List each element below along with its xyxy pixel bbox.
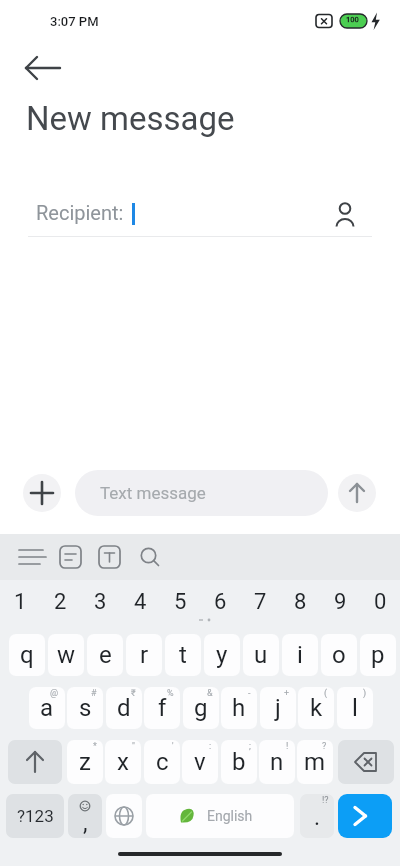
staticText: u bbox=[254, 641, 268, 669]
button[interactable]: l bbox=[337, 687, 373, 729]
button[interactable]: p bbox=[360, 634, 396, 676]
button[interactable]: 8 bbox=[280, 581, 320, 623]
staticText: " bbox=[132, 741, 135, 752]
button[interactable]: , bbox=[68, 794, 102, 838]
staticText: Recipient: bbox=[36, 201, 124, 224]
button[interactable]: 9 bbox=[320, 581, 360, 623]
button[interactable]: a bbox=[29, 687, 65, 729]
button[interactable]: z bbox=[67, 740, 103, 784]
button[interactable]: g bbox=[183, 687, 219, 729]
button[interactable]: f bbox=[144, 687, 180, 729]
button[interactable]: 7 bbox=[240, 581, 280, 623]
button[interactable]: 6 bbox=[200, 581, 240, 623]
staticText: . bbox=[314, 804, 321, 831]
button[interactable]: 0 bbox=[360, 581, 400, 623]
staticText: !? bbox=[322, 795, 329, 806]
staticText: v bbox=[194, 748, 206, 776]
staticText: 8 bbox=[294, 589, 307, 615]
staticText: & bbox=[207, 688, 213, 699]
staticText: l bbox=[352, 694, 358, 722]
staticText: , bbox=[83, 810, 88, 837]
staticText: t bbox=[179, 641, 187, 669]
button[interactable]: Recipient: bbox=[0, 192, 400, 236]
button[interactable]: s bbox=[67, 687, 103, 729]
staticText: + bbox=[284, 688, 290, 699]
button[interactable]: d bbox=[106, 687, 142, 729]
staticText: Text message bbox=[100, 483, 206, 503]
staticText: q bbox=[20, 641, 34, 669]
button[interactable]: 4 bbox=[120, 581, 160, 623]
staticText: y bbox=[216, 641, 228, 669]
staticText: n bbox=[270, 748, 284, 776]
button[interactable] bbox=[338, 794, 392, 838]
staticText: r bbox=[140, 641, 149, 669]
staticText: ?123 bbox=[17, 806, 54, 826]
staticText: 7 bbox=[254, 589, 267, 615]
staticText: % bbox=[167, 688, 174, 699]
button[interactable]: j bbox=[260, 687, 296, 729]
button[interactable]: English bbox=[146, 794, 294, 838]
staticText: 9 bbox=[334, 589, 347, 615]
button[interactable]: c bbox=[144, 740, 180, 784]
staticText: ) bbox=[363, 688, 367, 699]
button[interactable]: m bbox=[297, 740, 333, 784]
staticText: s bbox=[79, 694, 92, 722]
staticText: ₹ bbox=[131, 688, 136, 699]
staticText: ' bbox=[172, 741, 174, 752]
button[interactable]: Text message bbox=[75, 470, 328, 516]
button[interactable]: y bbox=[204, 634, 240, 676]
button[interactable]: k bbox=[298, 687, 334, 729]
staticText: z bbox=[79, 748, 91, 776]
staticText: o bbox=[332, 641, 346, 669]
staticText: 3 bbox=[94, 589, 107, 615]
button[interactable]: h bbox=[221, 687, 257, 729]
button[interactable]: 5 bbox=[160, 581, 200, 623]
button[interactable]: e bbox=[87, 634, 123, 676]
staticText: e bbox=[99, 641, 112, 669]
button[interactable]: t bbox=[165, 634, 201, 676]
staticText: ; bbox=[249, 741, 251, 752]
staticText: ! bbox=[286, 741, 289, 752]
button[interactable] bbox=[338, 740, 394, 784]
staticText: p bbox=[371, 641, 385, 669]
staticText: English bbox=[207, 808, 253, 824]
button[interactable]: u bbox=[243, 634, 279, 676]
button[interactable]: q bbox=[9, 634, 45, 676]
button[interactable]: . bbox=[300, 794, 334, 838]
button[interactable]: x bbox=[105, 740, 141, 784]
staticText: d bbox=[117, 694, 131, 722]
button[interactable]: o bbox=[321, 634, 357, 676]
staticText: i bbox=[297, 641, 303, 669]
staticText: 0 bbox=[374, 589, 387, 615]
staticText: m bbox=[304, 748, 326, 776]
staticText: j bbox=[275, 694, 281, 722]
button[interactable] bbox=[8, 740, 62, 784]
button[interactable] bbox=[23, 474, 61, 512]
staticText: 1 bbox=[14, 589, 27, 615]
staticText: k bbox=[310, 694, 323, 722]
staticText: : bbox=[209, 741, 212, 752]
button[interactable]: ?123 bbox=[6, 794, 64, 838]
staticText: 4 bbox=[134, 589, 147, 615]
button[interactable]: 1 bbox=[0, 581, 40, 623]
button[interactable]: n bbox=[259, 740, 295, 784]
staticText: 2 bbox=[54, 589, 67, 615]
button[interactable]: 2 bbox=[40, 581, 80, 623]
staticText: f bbox=[158, 694, 167, 722]
staticText: g bbox=[194, 694, 208, 722]
button[interactable] bbox=[338, 474, 376, 512]
button[interactable]: w bbox=[48, 634, 84, 676]
button[interactable]: r bbox=[126, 634, 162, 676]
staticText: ? bbox=[322, 741, 327, 752]
staticText: c bbox=[156, 748, 169, 776]
button[interactable]: i bbox=[282, 634, 318, 676]
staticText: b bbox=[232, 748, 246, 776]
staticText: New message bbox=[26, 99, 235, 138]
button[interactable] bbox=[22, 50, 66, 88]
staticText: 5 bbox=[174, 589, 187, 615]
button[interactable]: b bbox=[221, 740, 257, 784]
button[interactable]: v bbox=[182, 740, 218, 784]
button[interactable] bbox=[106, 794, 142, 838]
button[interactable]: 3 bbox=[80, 581, 120, 623]
staticText: h bbox=[232, 694, 246, 722]
